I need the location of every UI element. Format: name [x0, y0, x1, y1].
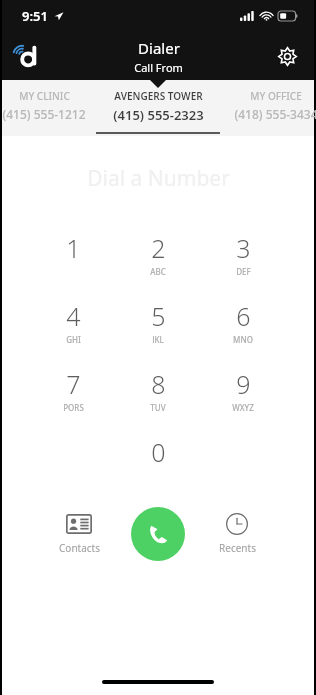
staticText: MNO: [233, 334, 253, 343]
button[interactable]: AVENGERS TOWER: [96, 88, 220, 134]
button[interactable]: 7: [34, 367, 112, 411]
button[interactable]: 2: [119, 231, 197, 275]
staticText: 1: [66, 231, 81, 265]
button[interactable]: Recents: [206, 513, 268, 555]
staticText: 0: [151, 435, 166, 469]
button[interactable]: Settings: [272, 41, 302, 71]
staticText: GHI: [66, 334, 81, 343]
staticText: Dial a Number: [87, 164, 230, 193]
staticText: (415) 555-2323: [113, 106, 204, 124]
staticText: 2: [151, 231, 166, 265]
staticText: 5: [151, 299, 166, 333]
button[interactable]: Dialpad logo: [12, 39, 46, 73]
button[interactable]: MY OFFICE: [216, 88, 316, 122]
staticText: Call From: [134, 60, 183, 75]
staticText: ABC: [150, 266, 166, 275]
staticText: 3: [236, 231, 251, 265]
button[interactable]: 3: [204, 231, 282, 275]
button[interactable]: 0: [119, 435, 197, 479]
staticText: 9: [236, 367, 251, 401]
button[interactable]: 8: [119, 367, 197, 411]
button[interactable]: 6: [204, 299, 282, 343]
button[interactable]: 5: [119, 299, 197, 343]
staticText: Recents: [219, 541, 256, 555]
button[interactable]: 9: [204, 367, 282, 411]
staticText: (415) 555-1212: [2, 106, 86, 122]
staticText: (418) 555-3434: [234, 106, 316, 122]
staticText: 6: [236, 299, 251, 333]
staticText: DEF: [236, 266, 251, 275]
button[interactable]: Call: [131, 507, 185, 561]
staticText: 9:51: [22, 7, 48, 25]
staticText: 7: [66, 367, 81, 401]
staticText: MY CLINIC: [19, 89, 70, 103]
button[interactable]: Contacts: [48, 514, 110, 555]
staticText: PQRS: [63, 402, 84, 411]
staticText: WXYZ: [232, 402, 254, 411]
staticText: AVENGERS TOWER: [114, 89, 203, 103]
button[interactable]: MY CLINIC: [0, 88, 104, 122]
staticText: TUV: [150, 402, 166, 411]
staticText: Dialer: [138, 38, 180, 58]
button[interactable]: 4: [34, 299, 112, 343]
staticText: 8: [151, 367, 166, 401]
staticText: 4: [66, 299, 81, 333]
staticText: MY OFFICE: [250, 89, 302, 103]
button[interactable]: 1: [34, 231, 112, 275]
staticText: Contacts: [59, 541, 100, 555]
staticText: JKL: [152, 334, 164, 343]
